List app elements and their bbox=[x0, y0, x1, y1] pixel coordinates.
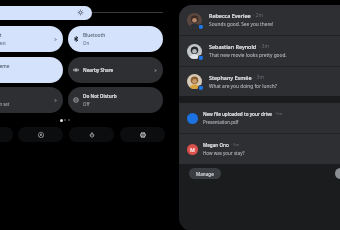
staticText: Dark theme bbox=[0, 63, 10, 69]
staticText: On bbox=[83, 40, 90, 46]
button[interactable]: New file uploaded to your drive bbox=[179, 103, 340, 133]
staticText: Sebastian Reynold bbox=[209, 43, 257, 50]
button[interactable]: Settings bbox=[120, 127, 165, 142]
button[interactable]: Manage bbox=[189, 168, 221, 179]
button[interactable]: Alarm bbox=[0, 87, 63, 113]
button[interactable]: M bbox=[179, 134, 340, 164]
button[interactable]: User bbox=[0, 127, 13, 142]
button[interactable]: Do Not Disturb bbox=[68, 87, 163, 113]
staticText: Stephany Esmée bbox=[209, 74, 252, 81]
button[interactable]: Dark theme bbox=[0, 57, 63, 83]
staticText: · 2m bbox=[253, 12, 263, 19]
staticText: M bbox=[190, 146, 195, 153]
staticText: Presentation.pdf bbox=[203, 119, 239, 125]
button[interactable]: Sebastian Reynold bbox=[179, 36, 340, 66]
staticText: Off bbox=[83, 101, 90, 107]
staticText: Manage bbox=[196, 171, 214, 177]
staticText: Nearby Share bbox=[83, 67, 114, 73]
button[interactable]: Bluetooth bbox=[68, 26, 163, 52]
staticText: That new movie looks pretty good. bbox=[209, 52, 287, 59]
button[interactable]: Power bbox=[69, 127, 114, 142]
staticText: What are you doing for lunch? bbox=[209, 83, 277, 90]
staticText: No alarm set bbox=[0, 101, 10, 107]
staticText: · 5m bbox=[274, 111, 283, 117]
staticText: Megan Ono bbox=[203, 142, 229, 148]
staticText: How was your stay? bbox=[203, 150, 245, 156]
button[interactable]: Rebecca Everlee bbox=[179, 5, 340, 35]
button[interactable]: Clear all bbox=[335, 168, 340, 179]
button[interactable]: Stephany Esmée bbox=[179, 67, 340, 96]
button[interactable]: Account bbox=[18, 127, 63, 142]
staticText: Do Not Disturb bbox=[83, 93, 117, 99]
button[interactable]: Nearby Share bbox=[68, 57, 163, 83]
staticText: Pixel Guest bbox=[0, 40, 6, 46]
staticText: Sounds good. See you there! bbox=[209, 21, 274, 28]
button[interactable]: Internet bbox=[0, 26, 63, 52]
button[interactable]: Brightness bbox=[0, 6, 92, 20]
staticText: · 3m bbox=[259, 43, 269, 50]
staticText: · 5m bbox=[231, 142, 240, 148]
staticText: Bluetooth bbox=[83, 32, 106, 38]
staticText: Rebecca Everlee bbox=[209, 12, 251, 19]
staticText: · 3m bbox=[254, 74, 264, 81]
staticText: Internet bbox=[0, 32, 2, 38]
staticText: New file uploaded to your drive bbox=[203, 111, 272, 117]
